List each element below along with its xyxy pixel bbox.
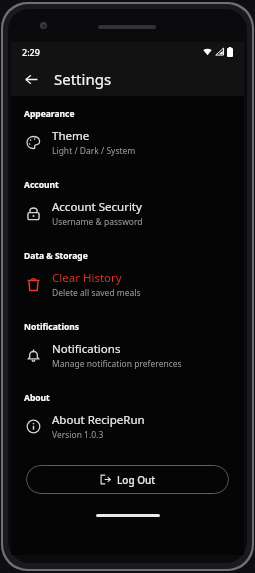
staticText: Data & Storage — [24, 250, 88, 262]
button[interactable]: Notifications — [11, 333, 244, 377]
staticText: Settings — [54, 69, 112, 89]
button[interactable]: Clear History — [11, 262, 244, 306]
staticText: Notifications — [52, 341, 121, 357]
button[interactable]: Theme — [11, 120, 244, 164]
staticText: Account — [24, 179, 59, 191]
staticText: Username & password — [52, 216, 143, 228]
staticText: About — [24, 392, 50, 404]
staticText: Notifications — [24, 321, 80, 333]
staticText: Clear History — [52, 270, 122, 286]
staticText: About RecipeRun — [52, 412, 145, 428]
staticText: Account Security — [52, 199, 142, 215]
staticText: Version 1.0.3 — [52, 429, 104, 441]
staticText: Log Out — [117, 473, 156, 487]
staticText: Delete all saved meals — [52, 287, 141, 299]
staticText: 2:29 — [22, 46, 40, 58]
staticText: Appearance — [24, 108, 75, 120]
staticText: Light / Dark / System — [52, 145, 136, 157]
button[interactable]: About RecipeRun — [11, 404, 244, 448]
button[interactable]: Account Security — [11, 191, 244, 235]
staticText: Manage notification preferences — [52, 358, 182, 370]
button[interactable]: Back — [16, 64, 46, 94]
staticText: Theme — [52, 128, 90, 144]
button[interactable]: Log Out — [26, 465, 229, 494]
